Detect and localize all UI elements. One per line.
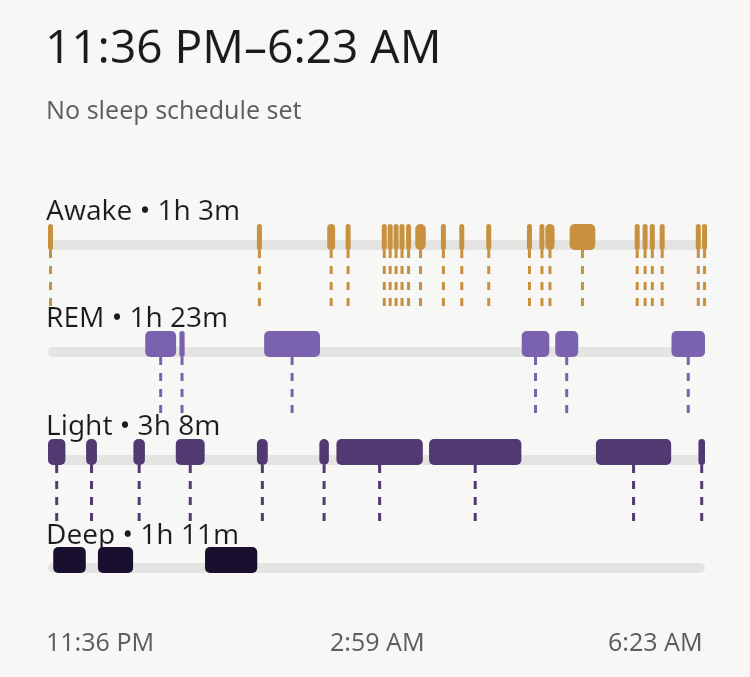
staticText: 11:36 PM (46, 624, 155, 658)
staticText: 6:23 AM (608, 624, 703, 658)
button[interactable]: Awake • 1h 3m (46, 190, 241, 228)
button[interactable]: Deep • 1h 11m (46, 514, 240, 552)
staticText: 2:59 AM (330, 624, 425, 658)
button[interactable]: Light • 3h 8m (46, 405, 221, 443)
button[interactable]: 11:36 PM–6:23 AM (45, 14, 442, 77)
staticText: No sleep schedule set (46, 92, 302, 126)
button[interactable]: REM • 1h 23m (46, 297, 229, 335)
